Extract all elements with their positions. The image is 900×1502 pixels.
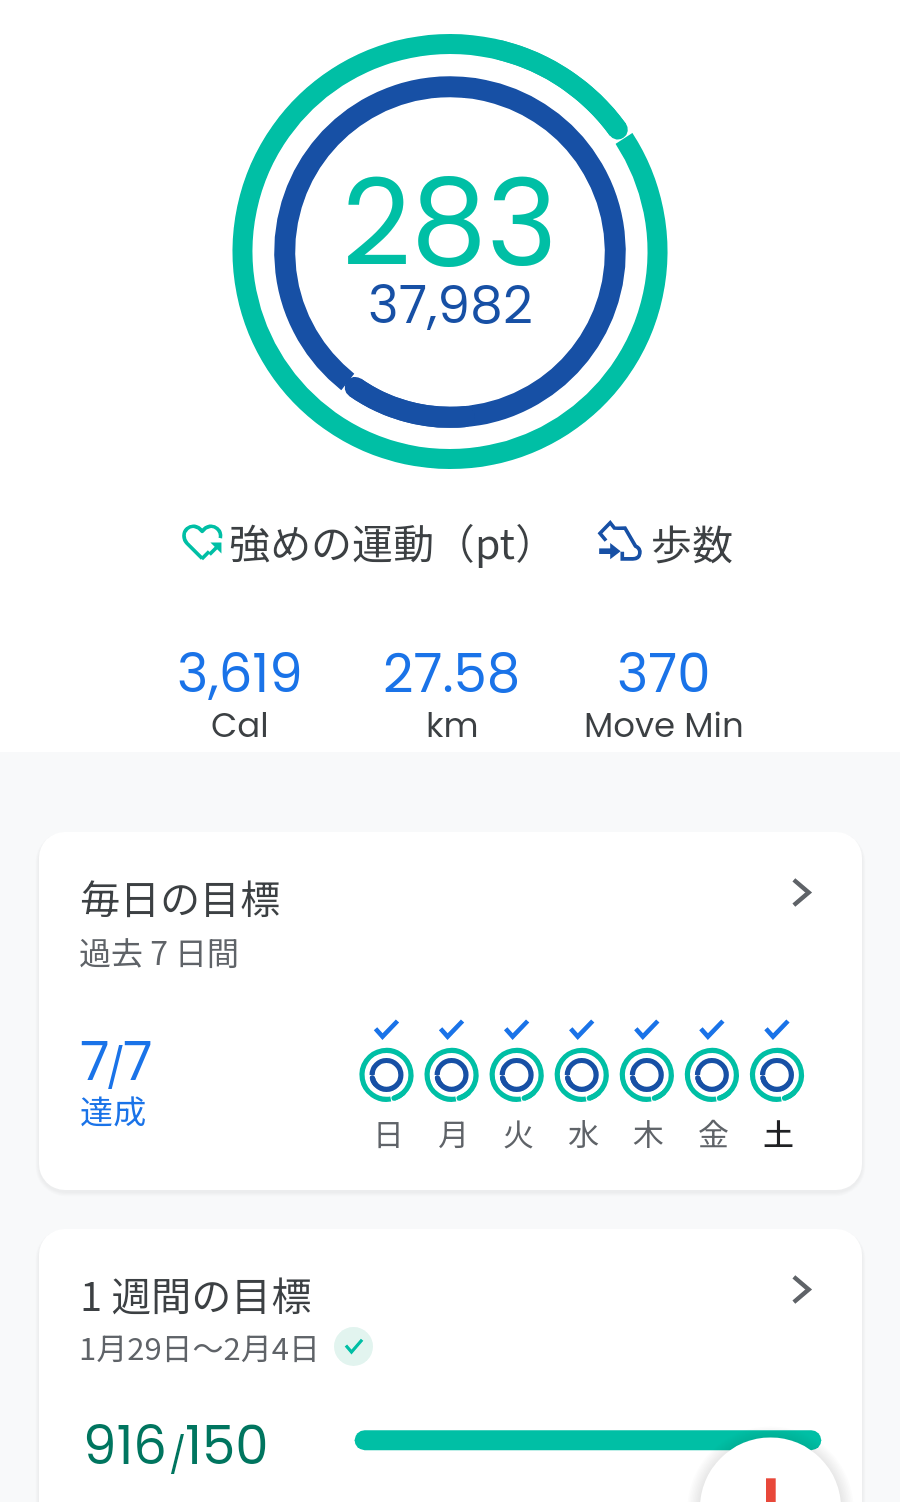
staticText: / [169,1430,187,1480]
staticText: 1月29日〜2月4日 [79,1324,321,1369]
staticText: 土 [763,1110,794,1155]
staticText: 日 [373,1110,404,1155]
button[interactable]: 27.58 [346,636,558,758]
staticText: 過去 7 日間 [79,928,240,974]
staticText: 916 [83,1408,168,1482]
staticText: 達成 [80,1086,146,1134]
button[interactable]: 3,619 [134,636,346,758]
button[interactable]: 毎日の目標 [39,832,862,1190]
staticText: km [426,701,479,749]
staticText: 木 [633,1110,664,1155]
staticText: 火 [503,1110,534,1155]
staticText: / [106,1040,126,1096]
button[interactable]: 強めの運動（pt） [180,511,556,570]
staticText: 150 [185,1408,269,1482]
staticText: Cal [211,701,269,749]
button[interactable]: 370 [558,636,770,758]
staticText: 水 [568,1110,599,1155]
staticText: 強めの運動（pt） [229,511,556,570]
staticText: 歩数 [651,512,733,571]
button[interactable]: 歩数 [595,512,733,571]
staticText: 370 [617,636,711,710]
staticText: 毎日の目標 [80,868,280,926]
staticText: 月 [438,1110,469,1155]
button[interactable]: 1 週間の目標 [39,1229,862,1502]
button[interactable]: Open daily goal [779,870,824,915]
staticText: 7 [123,1023,153,1099]
staticText: Move Min [584,701,744,749]
button[interactable]: Open weekly goal [779,1267,824,1312]
staticText: 27.58 [383,636,521,710]
staticText: 283 [342,139,558,307]
staticText: 3,619 [177,636,303,710]
staticText: 1 週間の目標 [80,1265,312,1323]
staticText: 7 [80,1023,110,1099]
staticText: 金 [698,1110,729,1155]
staticText: 37,982 [368,268,533,341]
